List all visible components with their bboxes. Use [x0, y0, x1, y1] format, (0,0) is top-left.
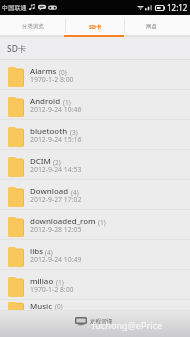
staticText: libs	[30, 246, 43, 257]
staticText: 12:12	[167, 2, 188, 13]
button[interactable]: 分类浏览	[0, 15, 65, 37]
staticText: SD卡	[89, 23, 102, 30]
button[interactable]: miliao	[0, 270, 190, 300]
staticText: fuchong@ePrice	[92, 319, 163, 331]
staticText: (1)	[63, 98, 71, 107]
staticText: downloaded_rom	[30, 216, 96, 227]
staticText: (0)	[59, 68, 67, 77]
button[interactable]: 网盘	[125, 15, 190, 37]
button[interactable]: Music	[0, 300, 190, 311]
staticText: DCIM	[30, 156, 51, 167]
button[interactable]: DCIM	[0, 150, 190, 180]
button[interactable]: Download	[0, 180, 190, 210]
button[interactable]: libs	[0, 240, 190, 270]
staticText: (2)	[53, 158, 61, 167]
button[interactable]: SD卡	[0, 37, 190, 60]
staticText: (0)	[55, 302, 63, 311]
staticText: Android	[30, 96, 61, 107]
staticText: (4)	[71, 188, 79, 197]
button[interactable]: downloaded_rom	[0, 210, 190, 240]
staticText: 2012-9-24 10:46	[30, 105, 82, 114]
staticText: (4)	[45, 248, 53, 257]
staticText: 远程管理	[90, 318, 113, 325]
button[interactable]: SD卡	[66, 15, 124, 37]
staticText: 分类浏览	[22, 23, 44, 30]
staticText: (3)	[70, 128, 78, 137]
staticText: 2012-9-24 10:49	[30, 255, 82, 264]
staticText: 2012-9-28 12:05	[30, 225, 82, 234]
staticText: 2012-9-24 14:53	[30, 165, 82, 174]
staticText: 2012-9-24 15:16	[30, 135, 82, 144]
staticText: 1970-1-2 8:00	[30, 285, 74, 294]
staticText: miliao	[30, 276, 54, 287]
other: 远程管理	[75, 317, 87, 325]
staticText: Alarms	[30, 66, 57, 77]
staticText: 2012-9-27 17:02	[30, 195, 82, 204]
button[interactable]: Alarms	[0, 60, 190, 90]
button[interactable]: 远程管理	[71, 315, 117, 327]
staticText: (1)	[56, 278, 64, 287]
staticText: Download	[30, 186, 69, 197]
button[interactable]: Android	[0, 90, 190, 120]
staticText: Music	[30, 301, 53, 311]
staticText: 网盘	[146, 23, 157, 30]
staticText: 中国联通	[2, 4, 27, 12]
staticText: SD卡	[7, 43, 27, 55]
staticText: bluetooth	[30, 126, 68, 137]
staticText: (1)	[98, 218, 106, 227]
staticText: 1970-1-2 8:00	[30, 75, 74, 84]
button[interactable]: bluetooth	[0, 120, 190, 150]
